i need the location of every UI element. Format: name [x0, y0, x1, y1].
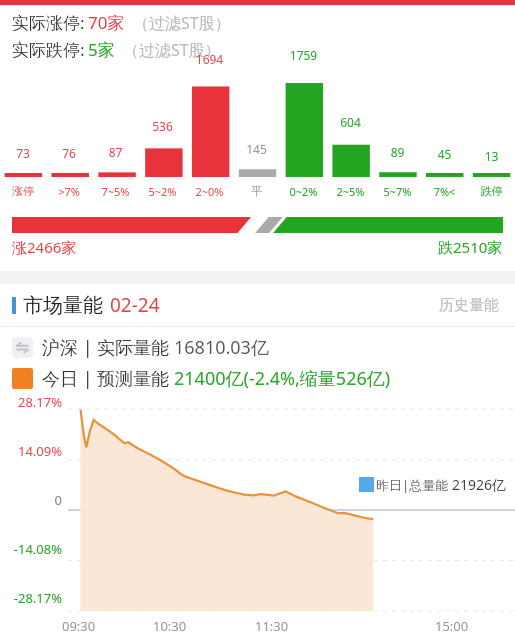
- staticText: 5~7%: [374, 184, 421, 199]
- staticText: 536: [139, 118, 186, 134]
- staticText: 28.17%: [0, 393, 62, 411]
- staticText: 平: [233, 184, 280, 198]
- staticText: 21400亿(-2.4%,缩量526亿): [174, 366, 391, 391]
- staticText: 13: [468, 148, 515, 164]
- staticText: -14.08%: [0, 540, 62, 558]
- button[interactable]: Switch market: [12, 335, 503, 360]
- staticText: 1694: [186, 51, 233, 67]
- staticText: 7~5%: [92, 184, 139, 199]
- staticText: 7%<: [421, 184, 468, 199]
- staticText: 涨2466家: [12, 237, 77, 257]
- staticText: 70家: [88, 11, 125, 34]
- button[interactable]: 实际跌停:: [12, 38, 503, 61]
- staticText: 89: [374, 144, 421, 160]
- staticText: 0: [0, 491, 62, 509]
- staticText: 实际跌停:: [12, 38, 85, 61]
- staticText: 15:00: [435, 617, 469, 635]
- staticText: 10:30: [153, 617, 187, 635]
- button[interactable]: 实际涨停:: [12, 11, 503, 34]
- staticText: 实际涨停:: [12, 11, 85, 34]
- staticText: 02-24: [110, 292, 160, 318]
- staticText: 今日 | 预测量能: [42, 366, 174, 391]
- staticText: 0~2%: [280, 184, 327, 199]
- staticText: 87: [92, 144, 139, 160]
- staticText: -28.17%: [0, 589, 62, 607]
- staticText: （过滤ST股）: [133, 12, 231, 34]
- staticText: 跌2510家: [438, 237, 503, 257]
- staticText: 145: [233, 141, 280, 157]
- staticText: 2~0%: [186, 184, 233, 199]
- staticText: 09:30: [62, 617, 96, 635]
- button[interactable]: 今日 | 预测量能: [12, 366, 503, 391]
- staticText: 11:30: [255, 617, 289, 635]
- staticText: 45: [421, 146, 468, 162]
- staticText: 昨日|总量能: [376, 476, 452, 494]
- staticText: 604: [327, 114, 374, 130]
- staticText: 1759: [280, 47, 327, 63]
- staticText: 21926亿: [452, 475, 507, 494]
- staticText: （过滤ST股）: [123, 39, 221, 61]
- staticText: 历史量能: [439, 296, 499, 315]
- staticText: 14.09%: [0, 442, 62, 460]
- staticText: 73: [0, 145, 46, 161]
- button[interactable]: [12, 217, 503, 233]
- staticText: 76: [46, 145, 92, 161]
- staticText: 沪深 | 实际量能: [42, 335, 174, 360]
- staticText: 16810.03亿: [174, 335, 269, 360]
- staticText: 5~2%: [139, 184, 186, 199]
- staticText: 涨停: [0, 184, 46, 198]
- staticText: 跌停: [468, 184, 515, 198]
- other: Switch market: [12, 337, 33, 358]
- button[interactable]: 历史量能: [435, 292, 503, 319]
- staticText: >7%: [46, 184, 92, 199]
- staticText: 2~5%: [327, 184, 374, 199]
- staticText: 5家: [88, 38, 115, 61]
- staticText: 市场量能: [23, 293, 103, 318]
